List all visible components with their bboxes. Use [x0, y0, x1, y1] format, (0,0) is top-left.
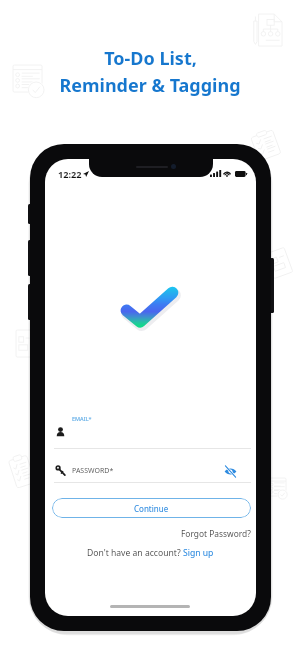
- staticText: Sign up: [183, 547, 214, 559]
- staticText: Continue: [134, 503, 169, 514]
- button[interactable]: Continue: [52, 498, 251, 518]
- staticText: 12:22: [58, 168, 82, 180]
- button[interactable]: Sign up: [183, 547, 214, 559]
- button[interactable]: Forgot Password?: [165, 527, 251, 540]
- staticText: Forgot Password?: [181, 528, 251, 539]
- staticText: PASSWORD*: [72, 466, 114, 476]
- button[interactable]: [54, 457, 214, 482]
- button[interactable]: Show password: [221, 462, 239, 480]
- staticText: EMAIL*: [72, 415, 92, 422]
- button[interactable]: [54, 412, 251, 448]
- staticText: To-Do List,: [104, 46, 197, 71]
- staticText: Don't have an account?: [87, 547, 183, 559]
- staticText: Reminder & Tagging: [59, 73, 241, 98]
